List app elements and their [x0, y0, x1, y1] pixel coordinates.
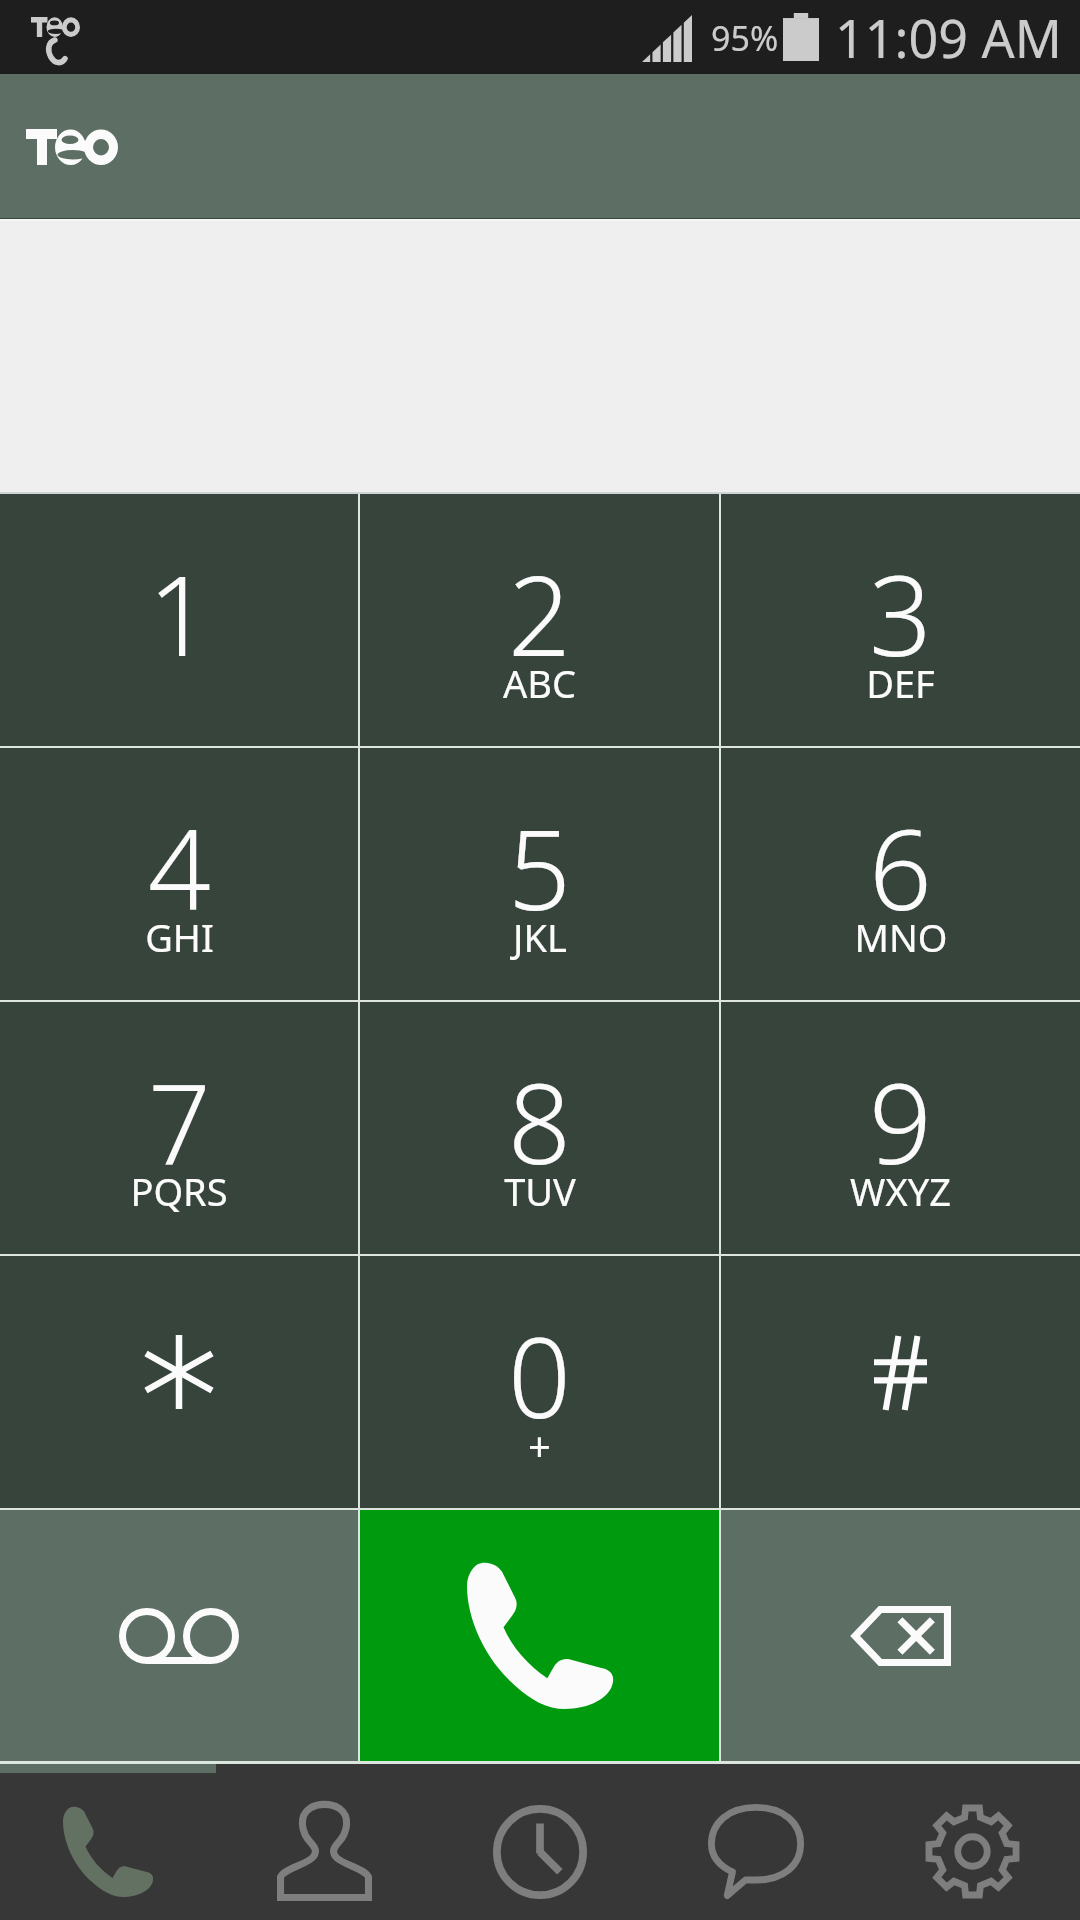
staticText: 3 [869, 538, 932, 688]
button[interactable]: Key # [721, 1256, 1080, 1508]
button[interactable]: Dialer [0, 1773, 216, 1920]
button[interactable]: Key * [0, 1256, 358, 1508]
staticText: DEF [866, 657, 935, 709]
staticText: TUV [504, 1165, 576, 1217]
staticText: 95% [711, 15, 779, 61]
button[interactable]: Contacts [216, 1773, 432, 1920]
staticText: 4 [148, 792, 211, 942]
staticText: 9 [869, 1046, 932, 1196]
button[interactable]: Backspace [721, 1510, 1080, 1761]
button[interactable]: Key 1 [0, 494, 358, 746]
staticText: + [528, 1418, 551, 1472]
staticText: 0 [508, 1300, 571, 1450]
staticText: JKL [513, 911, 567, 963]
staticText: 11:09 AM [835, 2, 1062, 73]
button[interactable]: Messages [648, 1773, 864, 1920]
staticText: PQRS [130, 1165, 228, 1217]
staticText: 6 [869, 792, 932, 942]
staticText: ABC [503, 657, 576, 709]
button[interactable]: Key 3 [721, 494, 1080, 746]
button[interactable]: Key 4 [0, 748, 358, 1000]
button[interactable]: Key 8 [360, 1002, 719, 1254]
button[interactable]: Key 5 [360, 748, 719, 1000]
button[interactable]: Call [360, 1510, 719, 1761]
staticText: 5 [508, 792, 571, 942]
button[interactable]: Key 9 [721, 1002, 1080, 1254]
staticText: MNO [854, 911, 948, 963]
button[interactable]: Key 7 [0, 1002, 358, 1254]
button[interactable]: Recents [432, 1773, 648, 1920]
staticText: GHI [145, 911, 214, 963]
button[interactable]: Key 6 [721, 748, 1080, 1000]
staticText: 8 [508, 1046, 571, 1196]
button[interactable]: Key 0 [360, 1256, 719, 1508]
staticText: 2 [508, 538, 571, 688]
staticText: 7 [148, 1046, 211, 1196]
staticText: WXYZ [850, 1165, 951, 1217]
staticText: 1 [148, 538, 211, 688]
button[interactable]: Key 2 [360, 494, 719, 746]
button[interactable]: Voicemail [0, 1510, 358, 1761]
button[interactable]: Settings [864, 1773, 1080, 1920]
